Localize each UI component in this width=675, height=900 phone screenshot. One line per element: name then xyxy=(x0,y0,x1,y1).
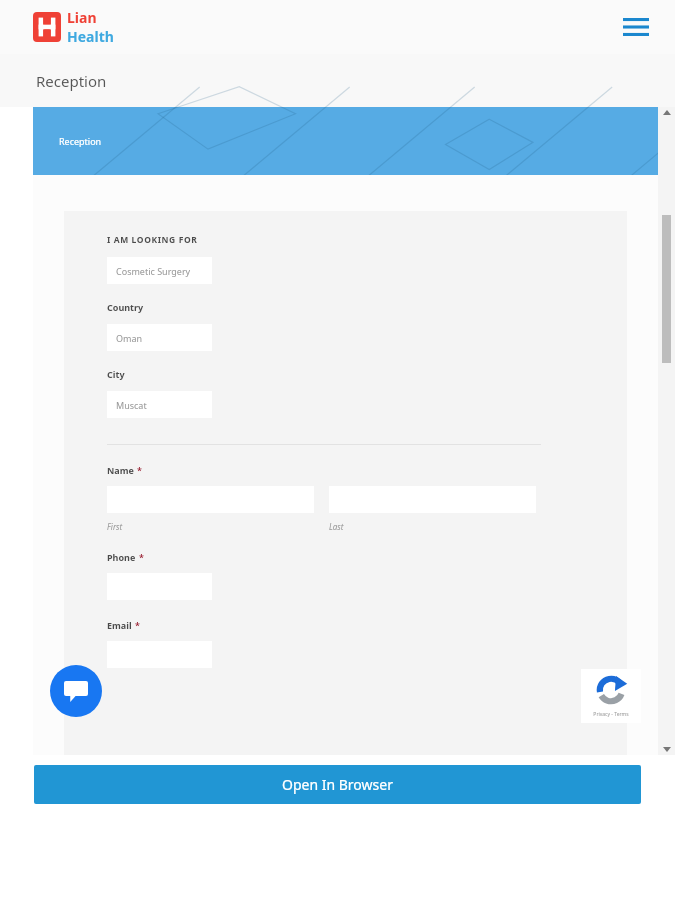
staticText: Last xyxy=(329,521,344,532)
button[interactable]: Menu xyxy=(619,10,653,44)
staticText: City xyxy=(107,368,125,380)
staticText: * xyxy=(139,551,144,563)
staticText: Phone xyxy=(107,551,136,563)
staticText: I AM LOOKING FOR xyxy=(107,234,198,246)
staticText: * xyxy=(135,619,140,631)
staticText: Email xyxy=(107,619,132,631)
staticText: * xyxy=(137,464,142,476)
button[interactable]: Muscat xyxy=(107,391,212,418)
button[interactable]: Cosmetic Surgery xyxy=(107,257,212,284)
staticText: Open In Browser xyxy=(282,775,393,794)
staticText: Muscat xyxy=(116,399,147,411)
button[interactable]: Lian xyxy=(33,8,114,46)
staticText: Oman xyxy=(116,332,143,344)
button[interactable]: reCAPTCHA xyxy=(581,669,641,723)
button[interactable]: Open chat xyxy=(50,665,102,717)
staticText: Reception xyxy=(36,71,107,91)
staticText: Cosmetic Surgery xyxy=(116,265,191,277)
button[interactable]: Open In Browser xyxy=(34,765,641,804)
staticText: Health xyxy=(67,27,114,46)
staticText: Privacy - Terms xyxy=(593,711,629,718)
staticText: Reception xyxy=(59,135,102,147)
button[interactable]: Oman xyxy=(107,324,212,351)
staticText: Country xyxy=(107,301,144,313)
staticText: Lian xyxy=(67,8,97,27)
staticText: First xyxy=(107,521,123,532)
staticText: Name xyxy=(107,464,134,476)
